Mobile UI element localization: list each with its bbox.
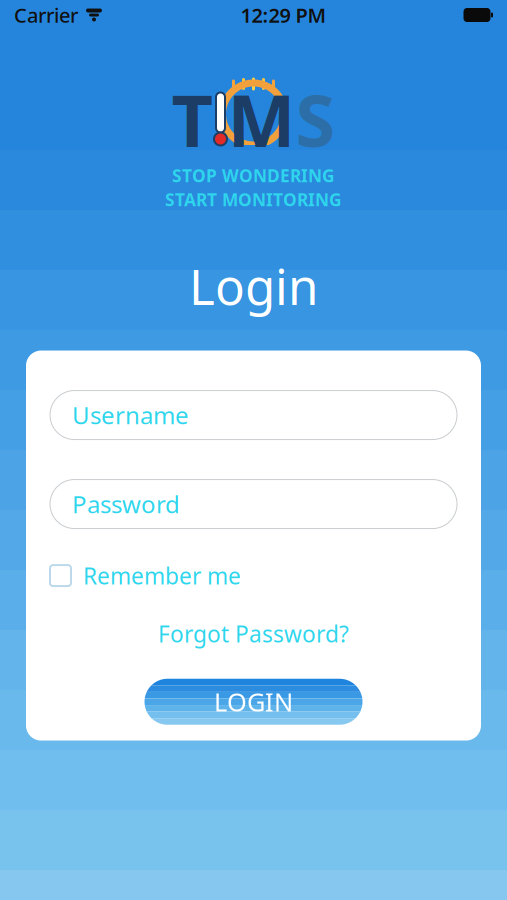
- staticText: Remember me: [83, 560, 241, 591]
- staticText: 12:29 PM: [240, 2, 326, 28]
- staticText: START MONITORING: [165, 188, 342, 211]
- staticText: M: [227, 71, 295, 167]
- staticText: LOGIN: [214, 685, 293, 718]
- staticText: Carrier: [14, 2, 78, 28]
- staticText: S: [295, 71, 335, 167]
- button[interactable]: LOGIN: [144, 679, 362, 725]
- staticText: Login: [189, 253, 318, 318]
- button[interactable]: Forgot Password?: [148, 615, 359, 653]
- staticText: Username: [72, 399, 189, 431]
- button[interactable]: Remember me: [50, 556, 241, 595]
- staticText: T: [171, 71, 213, 167]
- staticText: Forgot Password?: [158, 619, 349, 649]
- button[interactable]: Password: [50, 479, 457, 528]
- button[interactable]: Username: [50, 390, 457, 439]
- staticText: Password: [72, 488, 180, 520]
- staticText: STOP WONDERING: [172, 164, 335, 187]
